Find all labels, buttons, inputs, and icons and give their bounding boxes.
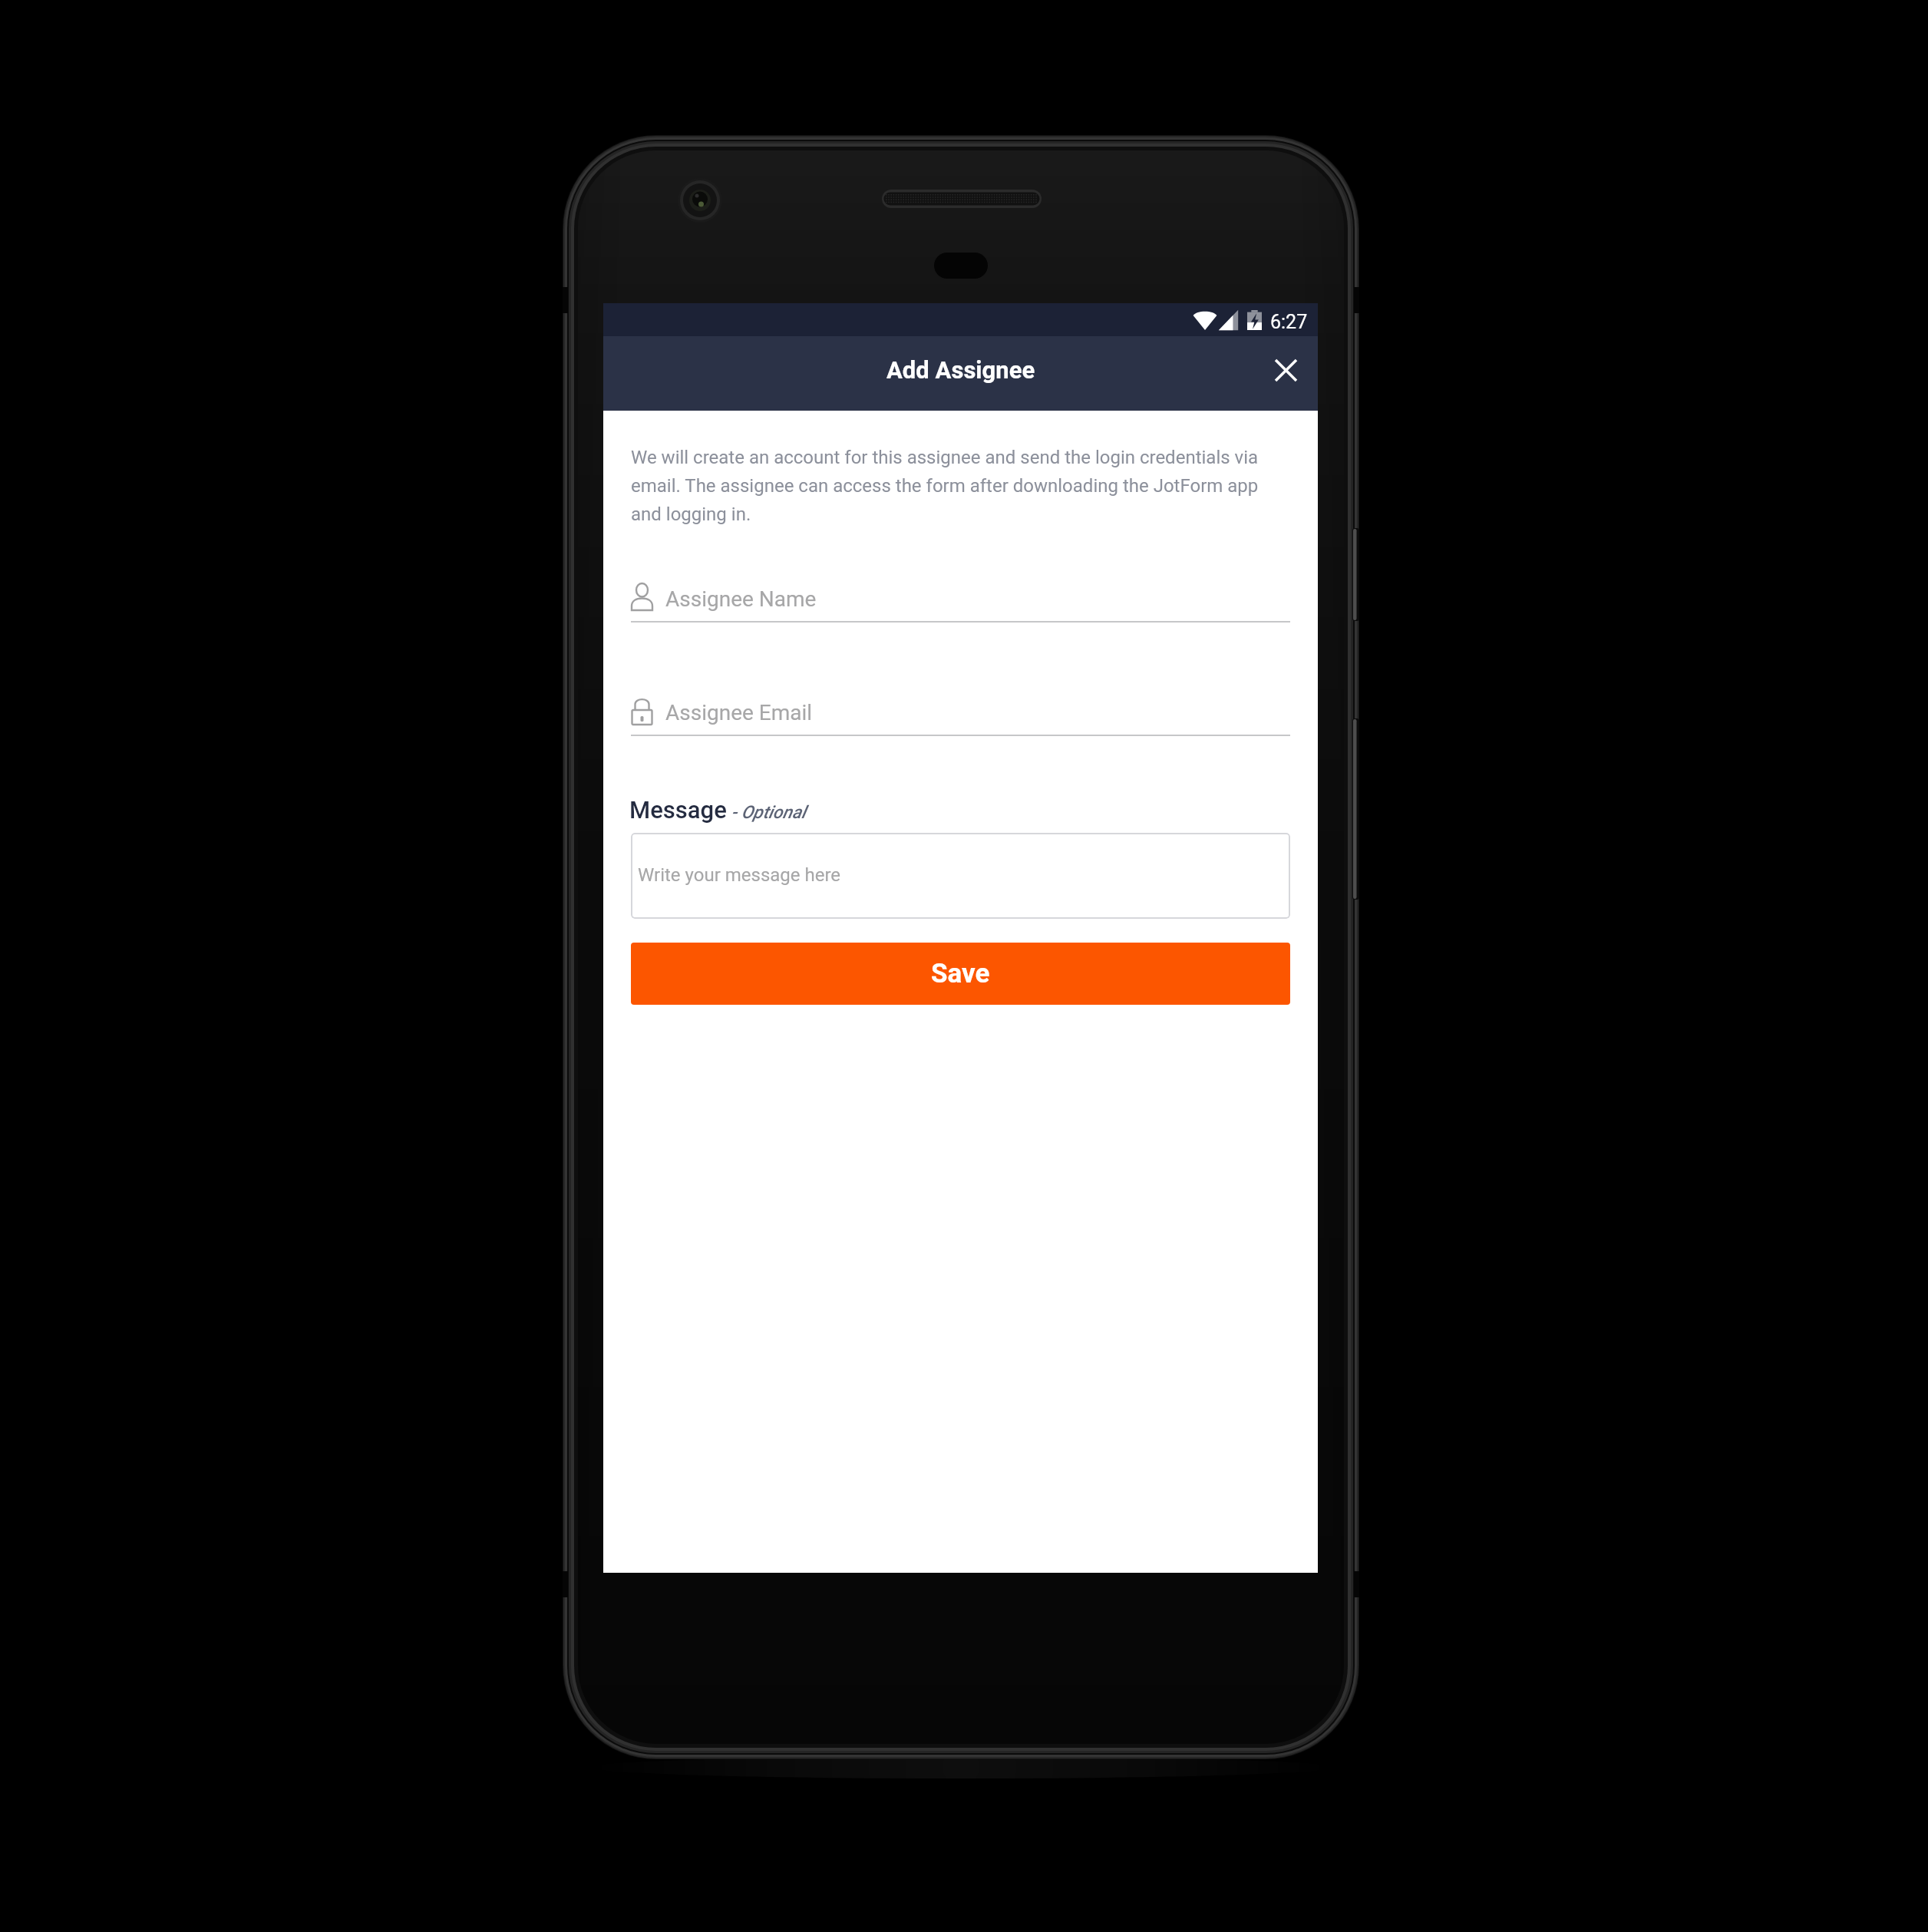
other: Assignee Name xyxy=(631,583,653,611)
staticText: Write your message here xyxy=(638,864,841,886)
button[interactable]: Assignee Email xyxy=(631,695,1290,736)
button[interactable]: Write your message here xyxy=(631,833,1290,919)
other: Assignee Email xyxy=(631,697,653,725)
staticText: Add Assignee xyxy=(886,356,1035,384)
staticText: Assignee Email xyxy=(665,700,813,725)
staticText: 6:27 xyxy=(1270,311,1308,333)
staticText: Assignee Name xyxy=(665,586,817,612)
button[interactable]: Close xyxy=(1260,345,1311,395)
staticText: We will create an account for this assig… xyxy=(631,441,1290,527)
button[interactable]: Save xyxy=(631,943,1290,1005)
button[interactable]: Assignee Name xyxy=(631,581,1290,623)
staticText: Message xyxy=(629,796,727,824)
staticText: Save xyxy=(931,958,990,989)
staticText: - Optional xyxy=(727,802,806,823)
